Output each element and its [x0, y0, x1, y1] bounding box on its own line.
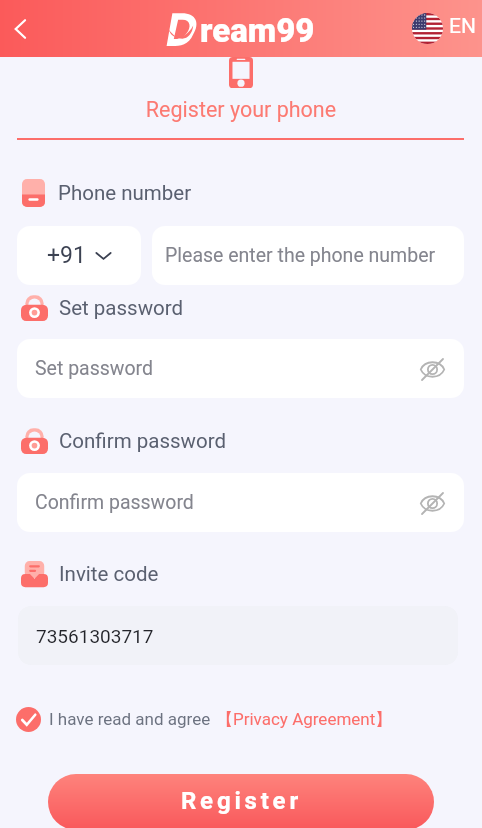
button[interactable]: Change language, English	[412, 13, 476, 44]
staticText: I have read and agree	[49, 709, 211, 729]
staticText: 73561303717	[36, 625, 154, 647]
staticText: Confirm password	[35, 491, 194, 514]
button[interactable]: +91	[17, 226, 141, 285]
staticText: Set password	[35, 357, 154, 380]
staticText: Phone number	[58, 181, 192, 205]
staticText: Please enter the phone number	[165, 244, 436, 267]
button[interactable]: I have read and agree	[16, 706, 393, 732]
button[interactable]: 73561303717	[18, 606, 458, 665]
button[interactable]: Dream99	[163, 9, 315, 48]
button[interactable]: Confirm password	[17, 473, 464, 532]
staticText: Set password	[59, 296, 184, 320]
button[interactable]: Set password	[17, 339, 464, 398]
staticText: Register your phone	[0, 97, 482, 122]
staticText: 【Privacy Agreement】	[216, 709, 393, 730]
button[interactable]: Show password	[417, 354, 447, 384]
staticText: ream99	[200, 11, 315, 50]
staticText: EN	[449, 14, 476, 39]
button[interactable]: Show password	[417, 488, 447, 518]
staticText: +91	[47, 242, 86, 269]
staticText: Confirm password	[59, 429, 226, 453]
staticText: Register	[181, 787, 302, 815]
button[interactable]: Please enter the phone number	[152, 226, 464, 285]
button[interactable]: Register	[48, 774, 434, 828]
button[interactable]: Back	[1, 10, 39, 48]
staticText: Invite code	[59, 562, 159, 586]
